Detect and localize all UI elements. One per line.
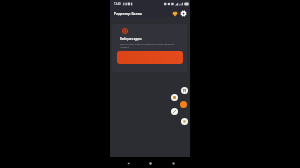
staticText: 13:46 bbox=[114, 2, 121, 6]
button[interactable]: Home bbox=[145, 158, 155, 168]
button[interactable]: Back bbox=[123, 158, 133, 168]
button[interactable]: Premium bbox=[170, 9, 179, 18]
button[interactable]: Add track bbox=[180, 101, 187, 108]
staticText: Для начала работы выберите аудио файл из bbox=[120, 42, 175, 45]
staticText: Редактор Банка bbox=[114, 11, 142, 16]
button[interactable]: Recents bbox=[168, 158, 178, 168]
button[interactable]: Record bbox=[181, 118, 188, 125]
staticText: Выберите аудио bbox=[120, 37, 142, 41]
button[interactable] bbox=[117, 51, 183, 64]
button[interactable]: Pause bbox=[181, 87, 188, 94]
button[interactable]: Trim bbox=[171, 94, 178, 101]
staticText: памяти bbox=[120, 45, 129, 48]
button[interactable]: Edit bbox=[171, 108, 178, 115]
button[interactable]: Settings bbox=[179, 9, 188, 18]
